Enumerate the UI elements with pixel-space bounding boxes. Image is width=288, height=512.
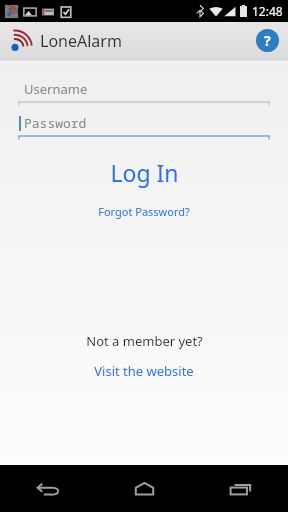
staticText: ? [264,31,271,50]
staticText: Not a member yet? [86,332,203,350]
button[interactable]: Home [96,465,192,512]
staticText: 12:48 [252,3,283,19]
button[interactable]: Forgot Password? [0,201,288,222]
staticText: Forgot Password? [98,204,190,219]
button[interactable]: Log In [0,153,288,192]
staticText: Log In [110,157,179,188]
staticText: Visit the website [94,362,194,380]
button[interactable]: Back [0,465,96,512]
staticText: Username [24,80,88,98]
button[interactable]: Help [256,29,279,52]
button[interactable]: Recent apps [192,465,288,512]
button[interactable]: Password [18,112,270,139]
staticText: Password [24,114,87,132]
button[interactable]: Visit the website [86,360,202,382]
button[interactable]: Username [18,78,270,105]
staticText: LoneAlarm [40,30,122,52]
